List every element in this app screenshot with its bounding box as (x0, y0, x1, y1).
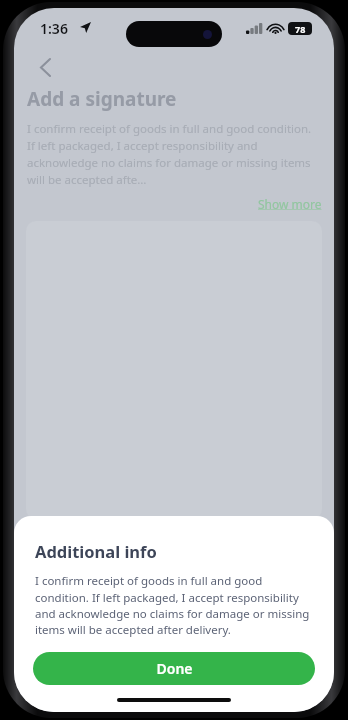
staticText: Show more (258, 196, 322, 212)
staticText: Additional info (35, 540, 157, 562)
button[interactable]: Done (33, 652, 315, 685)
staticText: I confirm receipt of goods in full and g… (35, 573, 315, 637)
button[interactable]: Show more (258, 196, 322, 212)
button[interactable]: Back (28, 50, 62, 84)
staticText: 78 (295, 23, 306, 35)
staticText: 1:36 (40, 19, 68, 38)
staticText: Add a signature (27, 86, 177, 112)
button[interactable] (26, 221, 322, 519)
staticText: Done (156, 659, 193, 678)
staticText: I confirm receipt of goods in full and g… (27, 121, 321, 188)
